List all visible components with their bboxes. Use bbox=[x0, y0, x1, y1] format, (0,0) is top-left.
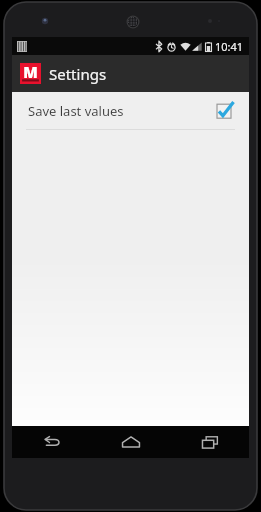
staticText: 10:41 bbox=[215, 39, 244, 54]
button[interactable]: Recent apps bbox=[170, 426, 249, 458]
staticText: Settings bbox=[49, 64, 107, 84]
staticText: Save last values bbox=[28, 102, 215, 120]
staticText: M bbox=[23, 62, 38, 82]
button[interactable]: Home bbox=[91, 426, 170, 458]
button[interactable]: Save last values bbox=[12, 92, 249, 129]
button[interactable]: Back bbox=[12, 426, 91, 458]
button[interactable]: Save last values checkbox, checked bbox=[215, 101, 235, 121]
